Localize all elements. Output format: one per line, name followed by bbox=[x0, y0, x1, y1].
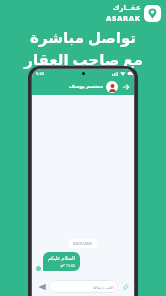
button[interactable]: Send bbox=[36, 281, 47, 292]
staticText: السلام عليكم bbox=[48, 255, 75, 262]
staticText: 03/01/2023 bbox=[73, 241, 93, 246]
button[interactable]: Asarak logo bbox=[106, 4, 161, 23]
button[interactable]: Contact avatar bbox=[106, 81, 118, 93]
staticText: 5:24 bbox=[36, 71, 44, 76]
staticText: عقــارك bbox=[113, 4, 141, 12]
staticText: مع صاحب العقار bbox=[24, 49, 143, 69]
button[interactable]: اكتب رسالة bbox=[49, 280, 118, 293]
staticText: تواصل مباشرة bbox=[30, 27, 136, 47]
staticText: معتصم يوسف bbox=[69, 83, 103, 90]
button[interactable]: السلام عليكم bbox=[43, 252, 80, 271]
staticText: 11:34 bbox=[66, 263, 75, 268]
staticText: اكتب رسالة bbox=[93, 284, 114, 290]
staticText: ASARAK bbox=[106, 13, 141, 23]
button[interactable]: Back bbox=[121, 82, 131, 92]
button[interactable]: Attach bbox=[120, 281, 130, 291]
